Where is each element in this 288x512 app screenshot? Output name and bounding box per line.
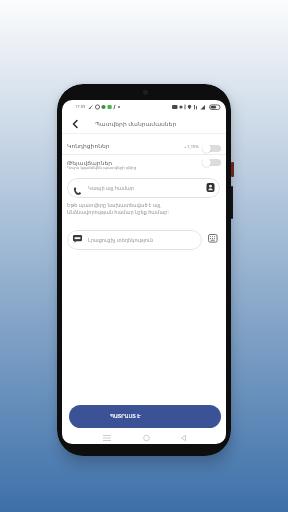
staticText: Լրացուցիչ տեղեկություն: [88, 237, 154, 244]
button[interactable]: Կոնդիցիոներ: [62, 138, 226, 154]
staticText: ՊԱՏՐԱՍՏ Է: [110, 413, 141, 420]
staticText: Պատվերի մանրամասներ: [95, 120, 177, 128]
button[interactable]: Կապի այլ համար: [67, 178, 220, 198]
button[interactable]: [206, 183, 215, 192]
staticText: Դուրս կգանձվեն պատվերի գնից: [67, 165, 137, 170]
button[interactable]: [202, 144, 221, 153]
button[interactable]: Թեյավճարներ: [62, 155, 226, 171]
button[interactable]: ՊԱՏՐԱՍՏ Է: [69, 405, 221, 428]
staticText: Անձնավորության համար նշեք համար:: [67, 209, 169, 216]
button[interactable]: Լրացուցիչ տեղեկություն: [67, 230, 202, 250]
staticText: Թեյավճարներ: [67, 159, 113, 166]
button[interactable]: [208, 234, 218, 243]
staticText: Եթե պատվերը նախատեսված է այլ: [67, 202, 161, 209]
button[interactable]: [202, 158, 221, 167]
staticText: 17:09: [75, 104, 86, 109]
staticText: + 1,15%: [184, 144, 199, 149]
staticText: Կոնդիցիոներ: [67, 142, 110, 149]
staticText: Կապի այլ համար: [88, 185, 135, 192]
button[interactable]: [68, 116, 82, 132]
